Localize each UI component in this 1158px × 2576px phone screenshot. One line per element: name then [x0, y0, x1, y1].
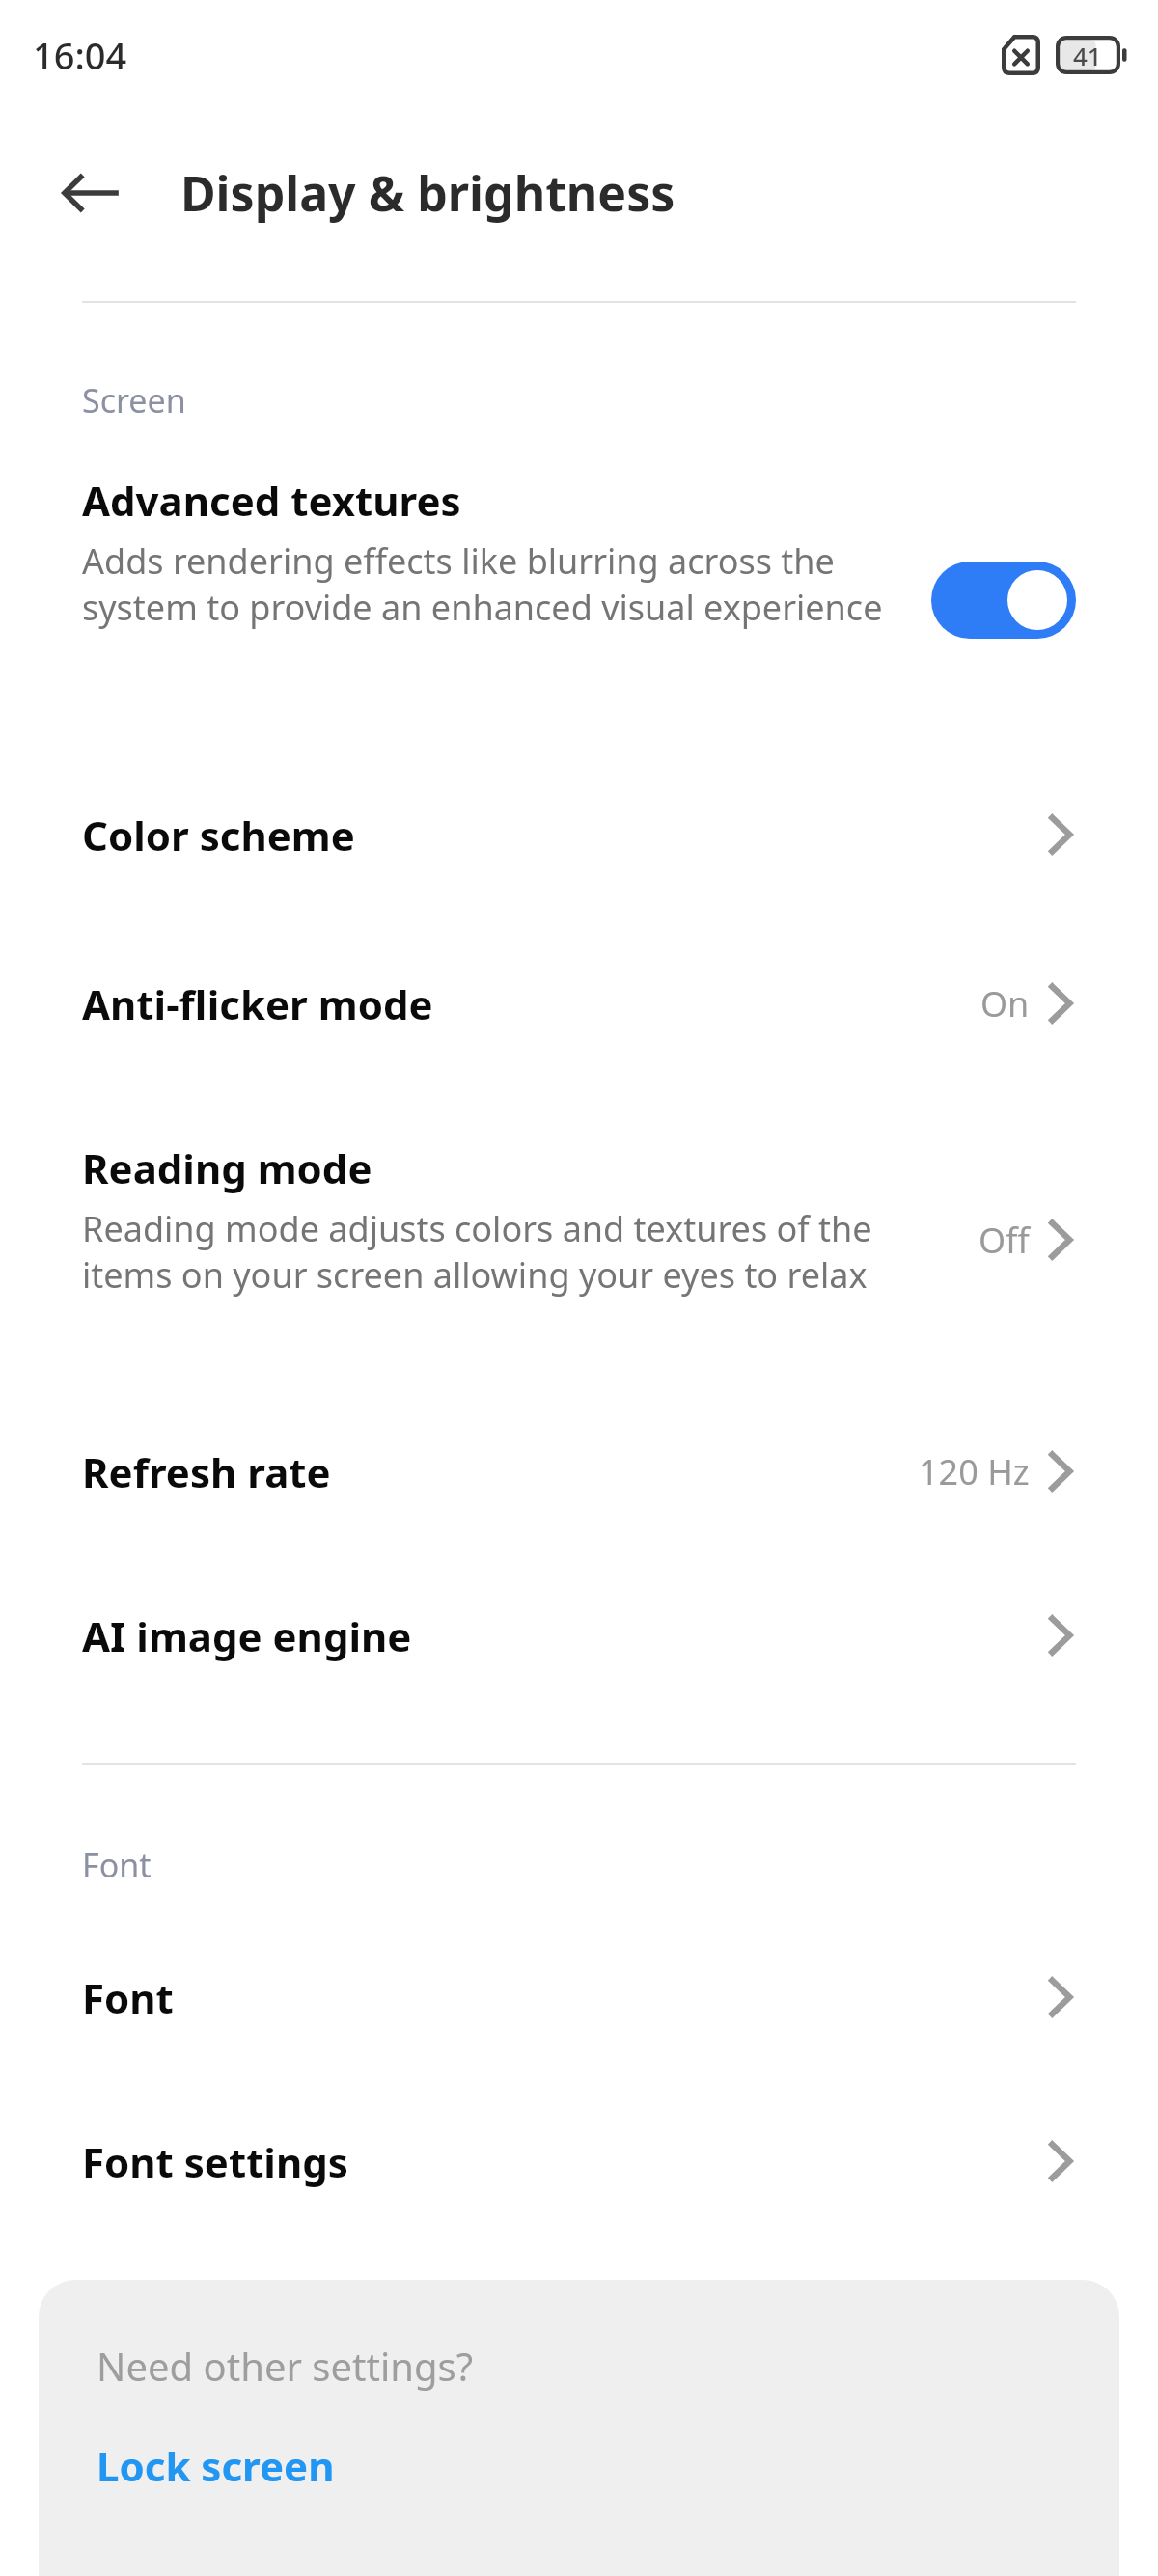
staticText: Reading mode [82, 1140, 372, 1195]
staticText: Refresh rate [82, 1444, 331, 1499]
staticText: Reading mode adjusts colors and textures… [82, 1205, 912, 1298]
button[interactable]: Advanced textures [0, 463, 1158, 656]
button[interactable]: AI image engine [0, 1563, 1158, 1708]
staticText: Advanced textures [82, 473, 461, 528]
staticText: On [980, 980, 1030, 1028]
other: Open [1047, 1971, 1076, 2023]
staticText: Font settings [82, 2134, 348, 2189]
other: Open [1047, 977, 1076, 1029]
staticText: AI image engine [82, 1608, 412, 1663]
staticText: Font [82, 1843, 152, 1887]
button[interactable]: Lock screen [58, 2415, 463, 2521]
other: Open [1047, 1445, 1076, 1497]
button[interactable]: Font [0, 1925, 1158, 2069]
button[interactable]: Back [39, 140, 145, 246]
staticText: Need other settings? [96, 2340, 474, 2392]
staticText: 120 Hz [919, 1448, 1030, 1495]
button[interactable]: Color scheme [0, 762, 1158, 907]
staticText: Display & brightness [180, 160, 675, 226]
staticText: Adds rendering effects like blurring acr… [82, 537, 883, 630]
button[interactable]: Refresh rate [0, 1399, 1158, 1544]
other: Open [1047, 808, 1076, 861]
button[interactable]: Reading mode [0, 1110, 1158, 1380]
staticText: 41 [1073, 39, 1102, 72]
staticText: Screen [82, 378, 186, 423]
staticText: Lock screen [96, 2438, 335, 2493]
staticText: 16:04 [33, 30, 127, 80]
staticText: Font [82, 1970, 174, 2025]
button[interactable]: Font settings [0, 2089, 1158, 2233]
other: Open [1047, 2135, 1076, 2187]
staticText: Off [979, 1217, 1030, 1264]
other: Open [1047, 1214, 1076, 1266]
staticText: Anti-flicker mode [82, 976, 433, 1031]
other: Open [1047, 1609, 1076, 1661]
button[interactable]: Anti-flicker mode [0, 931, 1158, 1076]
staticText: Color scheme [82, 808, 355, 863]
button[interactable]: Advanced textures toggle, on [931, 562, 1076, 639]
